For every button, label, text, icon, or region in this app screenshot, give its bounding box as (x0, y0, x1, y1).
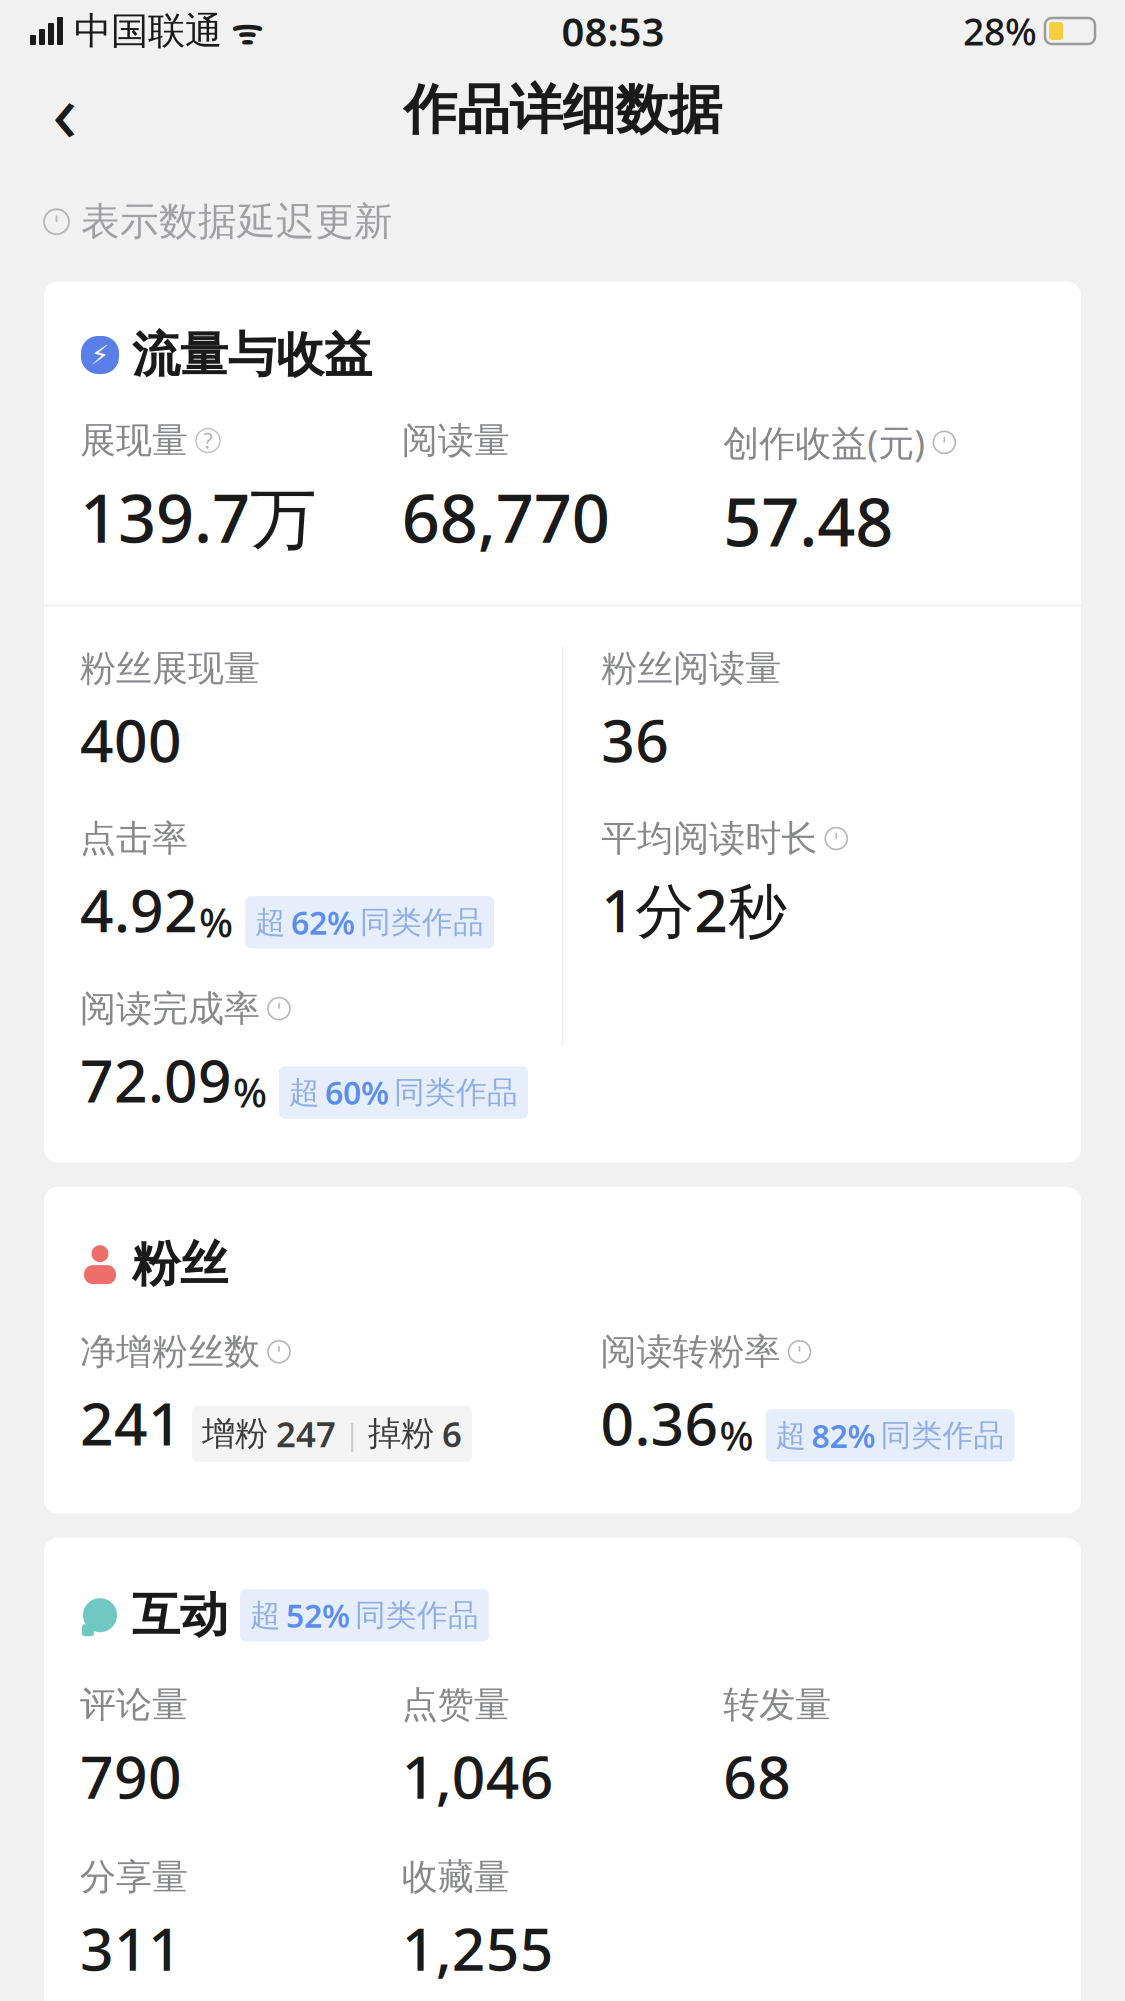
staticText: 同类作品 (394, 1074, 518, 1111)
staticText: 阅读完成率 (80, 986, 260, 1031)
staticText: 60% (325, 1071, 389, 1114)
staticText: ? (203, 426, 212, 455)
staticText: 08:53 (561, 4, 664, 57)
staticText: 粉丝 (132, 1235, 228, 1294)
staticText: 139.7万 (80, 473, 317, 561)
staticText: 创作收益(元) (723, 418, 925, 466)
staticText: 36 (601, 700, 669, 778)
staticText: 4.92 (80, 871, 198, 948)
staticText: 表示数据延迟更新 (81, 198, 393, 245)
staticText: 超 (250, 1596, 281, 1634)
staticText: 平均阅读时长 (601, 816, 817, 861)
staticText: 净增粉丝数 (80, 1330, 260, 1374)
staticText: 1,046 (402, 1737, 554, 1815)
staticText: 247 (276, 1411, 336, 1457)
staticText: ⚡︎ (90, 340, 109, 370)
staticText: 转发量 (723, 1683, 831, 1727)
staticText: 超 (289, 1074, 320, 1111)
button[interactable]: 返回 (30, 70, 100, 150)
staticText: 1分2秒 (601, 871, 787, 948)
staticText: 流量与收益 (132, 325, 372, 384)
staticText: 展现量 (80, 418, 188, 463)
staticText: 点赞量 (402, 1683, 510, 1727)
staticText: 收藏量 (402, 1855, 510, 1899)
staticText: 62% (291, 901, 355, 943)
staticText: 6 (442, 1411, 462, 1457)
staticText: 28% (963, 6, 1037, 56)
staticText: 68,770 (402, 473, 610, 561)
staticText: 增粉 (202, 1413, 268, 1454)
staticText: 互动 (132, 1586, 228, 1645)
staticText: 阅读量 (402, 418, 510, 463)
staticText: | (344, 1414, 360, 1453)
staticText: 作品详细数据 (403, 77, 721, 143)
staticText: ᯤ (222, 8, 263, 54)
staticText: 同类作品 (880, 1417, 1004, 1454)
staticText: % (719, 1409, 753, 1462)
staticText: 超 (255, 903, 286, 941)
staticText: 52% (286, 1594, 350, 1636)
staticText: 790 (80, 1737, 182, 1815)
staticText: 同类作品 (355, 1596, 479, 1634)
staticText: 点击率 (80, 816, 188, 861)
staticText: 72.09 (80, 1041, 232, 1119)
staticText: 311 (80, 1909, 182, 1987)
staticText: 中国联通 (63, 8, 222, 54)
staticText: 241 (80, 1384, 182, 1462)
staticText: 同类作品 (360, 903, 484, 941)
staticText: 评论量 (80, 1683, 188, 1727)
staticText: 57.48 (723, 476, 893, 565)
staticText: 0.36 (600, 1384, 718, 1462)
staticText: 68 (723, 1737, 791, 1815)
staticText: % (199, 895, 233, 948)
staticText: 1,255 (402, 1909, 554, 1987)
staticText: 阅读转粉率 (600, 1330, 780, 1374)
staticText: 分享量 (80, 1855, 188, 1899)
staticText: ‹ (52, 55, 78, 165)
staticText: 400 (80, 700, 182, 778)
staticText: % (233, 1065, 267, 1119)
staticText: 82% (811, 1414, 875, 1457)
staticText: 粉丝阅读量 (601, 646, 781, 690)
staticText: 掉粉 (368, 1413, 434, 1454)
staticText: 超 (775, 1417, 806, 1454)
staticText: 粉丝展现量 (80, 646, 260, 690)
